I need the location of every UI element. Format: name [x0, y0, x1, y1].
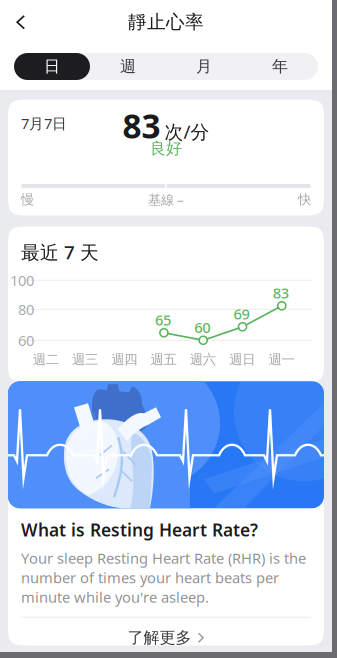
button[interactable]: 週 [90, 53, 166, 80]
staticText: 慢 [21, 191, 34, 208]
staticText: 週二 [33, 351, 59, 368]
staticText: 週一 [268, 351, 294, 368]
button[interactable]: 日 [14, 53, 90, 80]
staticText: 週三 [72, 351, 98, 368]
staticText: 週五 [150, 351, 176, 368]
staticText: 69 [233, 304, 249, 324]
staticText: 最近 7 天 [21, 239, 99, 264]
staticText: 週日 [229, 351, 255, 368]
button[interactable]: 了解更多 [8, 618, 324, 658]
staticText: 83 [122, 103, 160, 148]
button[interactable]: 返回 [5, 6, 37, 38]
staticText: 週六 [190, 351, 216, 368]
staticText: 100 [10, 271, 34, 290]
staticText: 靜止心率 [128, 10, 204, 33]
staticText: 週四 [111, 351, 137, 368]
staticText: 65 [155, 310, 171, 330]
staticText: 週 [120, 57, 136, 76]
button[interactable]: 月 [166, 53, 242, 80]
staticText: 7月7日 [21, 113, 67, 133]
staticText: Your sleep Resting Heart Rate (RHR) is t… [21, 548, 306, 607]
staticText: 月 [196, 57, 212, 76]
staticText: 年 [272, 57, 288, 76]
staticText: 83 [273, 283, 289, 303]
staticText: What is Resting Heart Rate? [21, 518, 258, 541]
staticText: 了解更多 [127, 628, 191, 648]
staticText: 良好 [150, 139, 182, 158]
staticText: 次/分 [164, 119, 209, 144]
button[interactable]: 年 [242, 53, 318, 80]
staticText: 60 [194, 318, 210, 337]
staticText: 基線 – [148, 191, 184, 208]
staticText: 快 [298, 191, 311, 208]
staticText: 80 [18, 300, 34, 319]
staticText: 60 [18, 331, 34, 350]
staticText: 日 [44, 57, 60, 76]
